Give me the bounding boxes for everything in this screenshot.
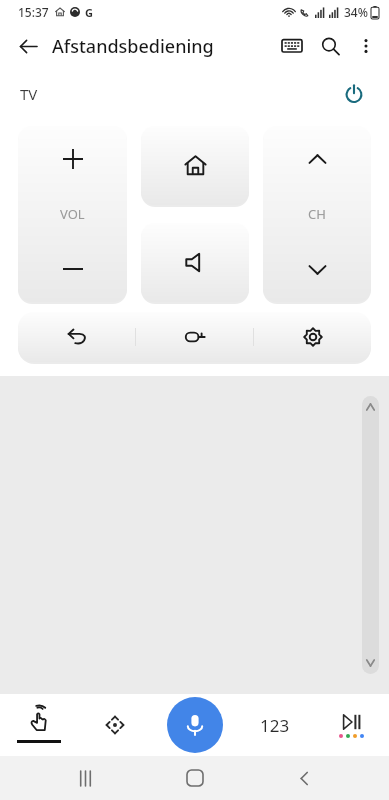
staticText: 15:37 bbox=[18, 4, 49, 20]
button[interactable]: Power bbox=[335, 75, 373, 113]
button[interactable]: Channel up bbox=[263, 126, 371, 302]
staticText: Afstandsbediening bbox=[52, 34, 214, 59]
button[interactable]: Back bbox=[18, 312, 135, 362]
button[interactable]: D-pad mode bbox=[77, 694, 153, 756]
button[interactable]: Back bbox=[280, 756, 328, 800]
staticText: VOL bbox=[60, 205, 85, 223]
button[interactable]: Scroll bbox=[362, 396, 379, 674]
button[interactable]: Channel down bbox=[302, 254, 332, 284]
button[interactable]: Touchpad mode bbox=[0, 694, 77, 756]
button[interactable]: Source bbox=[136, 312, 253, 362]
staticText: G bbox=[85, 5, 93, 20]
other: Home bbox=[141, 126, 249, 205]
button[interactable] bbox=[141, 223, 249, 302]
button[interactable]: Voice search bbox=[167, 697, 223, 753]
staticText: 123 bbox=[260, 714, 290, 737]
button[interactable]: Home bbox=[171, 756, 219, 800]
button[interactable]: Volume down bbox=[58, 254, 88, 284]
button[interactable]: Recents bbox=[61, 756, 109, 800]
staticText: CH bbox=[308, 205, 326, 223]
staticText: 34% bbox=[344, 4, 368, 20]
staticText: TV bbox=[20, 84, 38, 104]
button[interactable]: Search bbox=[311, 27, 349, 65]
button[interactable]: Back bbox=[10, 28, 46, 64]
button[interactable]: Keyboard bbox=[273, 27, 311, 65]
button[interactable]: Channel up bbox=[302, 144, 332, 174]
button[interactable] bbox=[141, 126, 249, 205]
button[interactable]: More options bbox=[349, 29, 383, 63]
button[interactable]: Apps bbox=[313, 694, 389, 756]
button[interactable]: Volume up bbox=[58, 144, 88, 174]
button[interactable]: Number pad bbox=[237, 694, 313, 756]
button[interactable]: Touchpad bbox=[0, 376, 389, 694]
other: Mute bbox=[141, 223, 249, 302]
button[interactable]: Volume up bbox=[18, 126, 127, 302]
button[interactable]: Settings bbox=[254, 312, 371, 362]
